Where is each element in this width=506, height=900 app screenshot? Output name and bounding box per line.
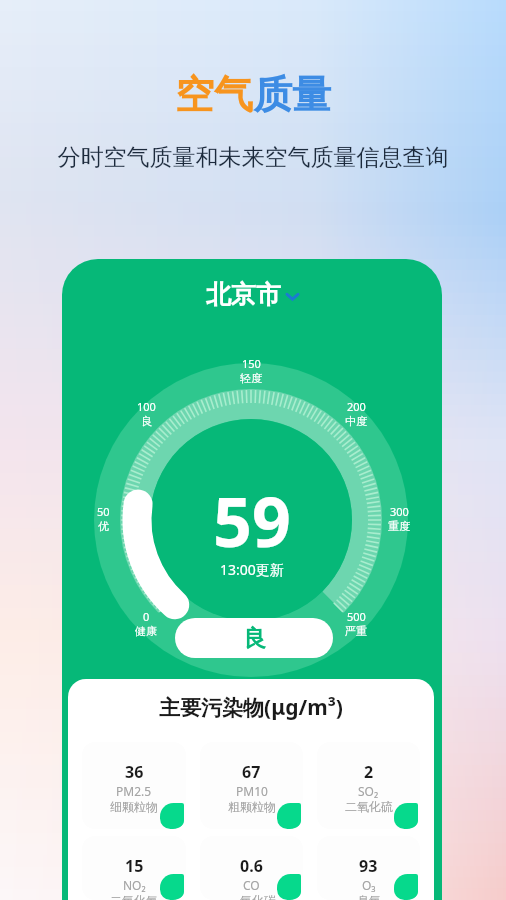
staticText: 15 <box>125 855 144 877</box>
staticText: PM10 <box>236 783 268 799</box>
staticText: 93 <box>359 855 378 877</box>
staticText: 二氧化硫 <box>345 799 393 814</box>
button[interactable]: 93 <box>317 836 420 900</box>
other: Change city <box>287 291 298 302</box>
button[interactable]: 北京市 <box>62 279 442 310</box>
button[interactable]: 0.6 <box>200 836 303 900</box>
staticText: 二氧化氮 <box>110 893 158 900</box>
staticText: 59 <box>213 474 291 567</box>
staticText: CO <box>243 877 260 893</box>
staticText: 13:00更新 <box>220 560 284 579</box>
staticText: 150 <box>242 356 261 371</box>
staticText: 0.6 <box>240 855 263 877</box>
staticText: 分时空气质量和未来空气质量信息查询 <box>0 143 506 172</box>
staticText: PM2.5 <box>116 783 152 799</box>
staticText: 200 <box>347 399 366 414</box>
staticText: 严重 <box>345 624 367 637</box>
staticText: 健康 <box>135 624 157 637</box>
staticText: 臭氧 <box>357 893 381 900</box>
button[interactable]: 67 <box>200 742 303 829</box>
staticText: 轻度 <box>240 371 262 384</box>
staticText: 北京市 <box>206 279 281 310</box>
staticText: 中度 <box>345 414 367 427</box>
staticText: 50 <box>97 504 110 519</box>
staticText: 重度 <box>388 519 410 532</box>
staticText: 0 <box>143 609 150 624</box>
staticText: 良 <box>243 624 266 653</box>
staticText: 主要污染物(μg/m³) <box>68 693 434 722</box>
staticText: 粗颗粒物 <box>228 799 276 814</box>
staticText: 良 <box>141 414 152 427</box>
staticText: 优 <box>98 519 109 532</box>
button[interactable]: 良 <box>175 618 333 658</box>
staticText: 一氧化碳 <box>228 893 276 900</box>
staticText: 细颗粒物 <box>110 799 158 814</box>
staticText: O₃ <box>362 877 376 893</box>
staticText: 质量 <box>253 70 331 119</box>
button[interactable]: 36 <box>82 742 186 829</box>
staticText: 空气 <box>175 70 253 119</box>
staticText: 100 <box>137 399 156 414</box>
staticText: 67 <box>242 761 261 783</box>
staticText: NO₂ <box>123 877 146 893</box>
staticText: 36 <box>125 761 144 783</box>
staticText: 500 <box>347 609 366 624</box>
staticText: 2 <box>364 761 374 783</box>
button[interactable]: 2 <box>317 742 420 829</box>
button[interactable]: 15 <box>82 836 186 900</box>
staticText: 300 <box>390 504 409 519</box>
staticText: SO₂ <box>358 783 379 799</box>
